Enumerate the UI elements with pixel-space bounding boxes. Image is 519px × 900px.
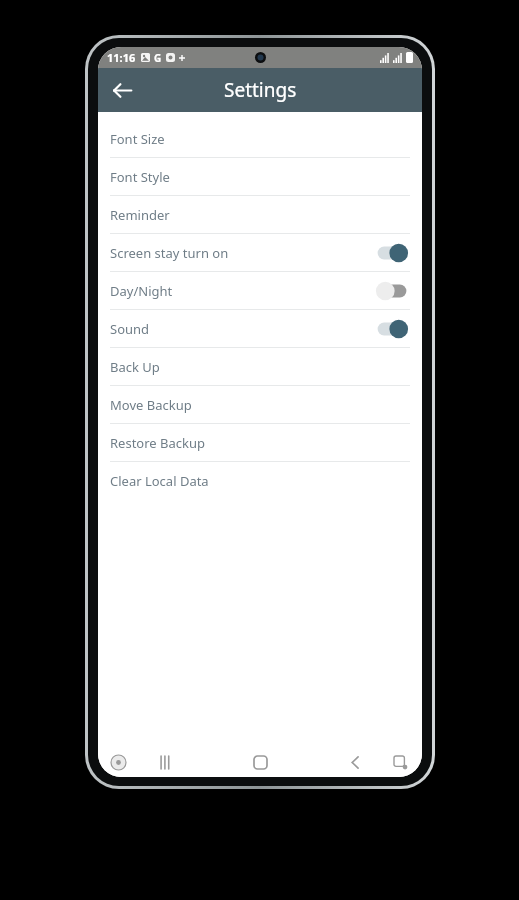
button[interactable]: Clear Local Data bbox=[98, 462, 422, 499]
button[interactable]: Recents bbox=[150, 747, 180, 777]
button[interactable]: Font Style bbox=[98, 158, 422, 195]
staticText: Day/Night bbox=[110, 282, 173, 300]
button[interactable]: Toggle off bbox=[374, 278, 410, 304]
staticText: Font Style bbox=[110, 168, 170, 186]
button[interactable]: Back bbox=[102, 70, 142, 110]
button[interactable]: Toggle on bbox=[374, 316, 410, 342]
staticText: Clear Local Data bbox=[110, 472, 209, 490]
staticText: Move Backup bbox=[110, 396, 192, 414]
staticText: G bbox=[154, 51, 162, 65]
staticText: Reminder bbox=[110, 206, 170, 224]
button[interactable]: Keyboard bbox=[388, 750, 412, 774]
button[interactable]: Screenshot bbox=[106, 750, 130, 774]
staticText: 11:16 bbox=[107, 50, 136, 65]
button[interactable]: Back Up bbox=[98, 348, 422, 385]
staticText: Settings bbox=[224, 77, 297, 103]
staticText: Back Up bbox=[110, 358, 160, 376]
button[interactable]: Font Size bbox=[98, 120, 422, 157]
button[interactable]: Screen stay turn on bbox=[98, 234, 422, 271]
staticText: Screen stay turn on bbox=[110, 244, 229, 262]
staticText: Restore Backup bbox=[110, 434, 205, 452]
button[interactable]: Back bbox=[340, 747, 370, 777]
button[interactable]: Reminder bbox=[98, 196, 422, 233]
button[interactable]: Sound bbox=[98, 310, 422, 347]
staticText: Sound bbox=[110, 320, 150, 338]
staticText: Font Size bbox=[110, 130, 165, 148]
button[interactable]: Restore Backup bbox=[98, 424, 422, 461]
button[interactable]: Move Backup bbox=[98, 386, 422, 423]
button[interactable]: Home bbox=[245, 747, 275, 777]
button[interactable]: Day/Night bbox=[98, 272, 422, 309]
button[interactable]: Toggle on bbox=[374, 240, 410, 266]
